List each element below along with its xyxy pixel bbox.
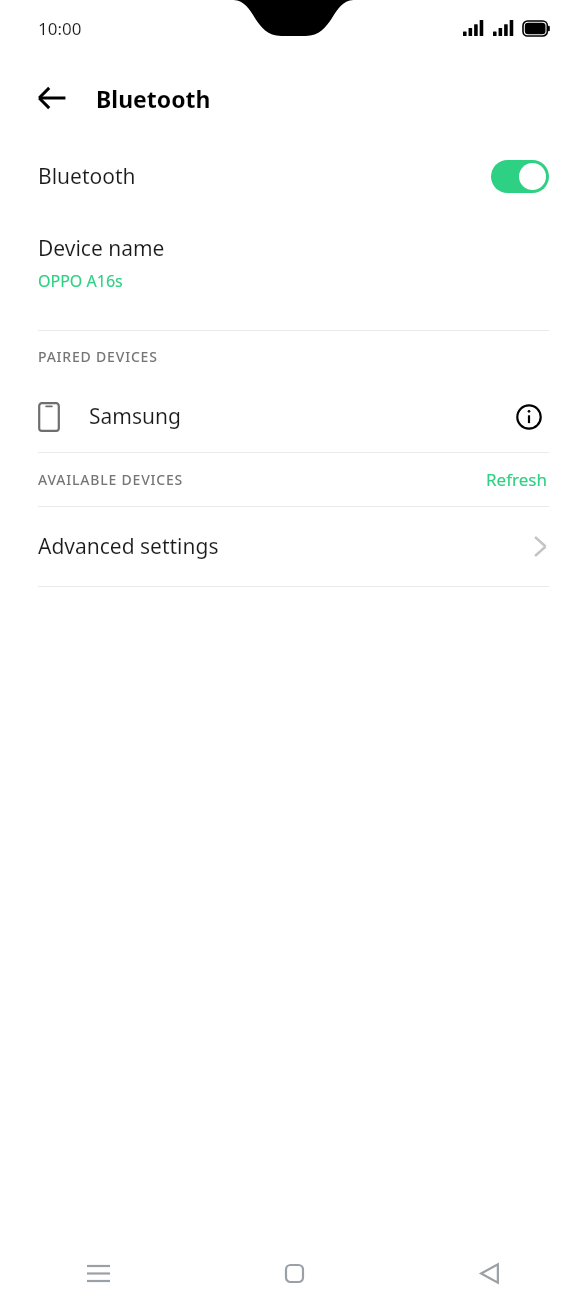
button[interactable]: Bluetooth	[0, 140, 587, 212]
staticText: Device name	[38, 234, 165, 263]
staticText: Samsung	[89, 402, 509, 431]
button[interactable]: Home	[265, 1244, 323, 1302]
staticText: Refresh	[486, 468, 547, 491]
staticText: Bluetooth	[96, 83, 211, 114]
button[interactable]: Device info	[509, 397, 549, 437]
button[interactable]: Device name	[0, 212, 587, 310]
staticText: 10:00	[38, 17, 82, 40]
staticText: AVAILABLE DEVICES	[38, 470, 484, 489]
button[interactable]: Refresh	[484, 462, 549, 497]
button[interactable]: Back	[460, 1244, 518, 1302]
staticText: Advanced settings	[38, 532, 532, 561]
staticText: PAIRED DEVICES	[38, 347, 158, 366]
button[interactable]: Bluetooth toggle, on	[491, 160, 549, 193]
button[interactable]: Back	[26, 72, 78, 124]
staticText: Bluetooth	[38, 162, 491, 191]
button[interactable]: Recent apps	[69, 1244, 127, 1302]
button[interactable]: Advanced settings	[0, 507, 587, 586]
button[interactable]: Samsung	[0, 381, 587, 452]
staticText: OPPO A16s	[38, 270, 123, 292]
